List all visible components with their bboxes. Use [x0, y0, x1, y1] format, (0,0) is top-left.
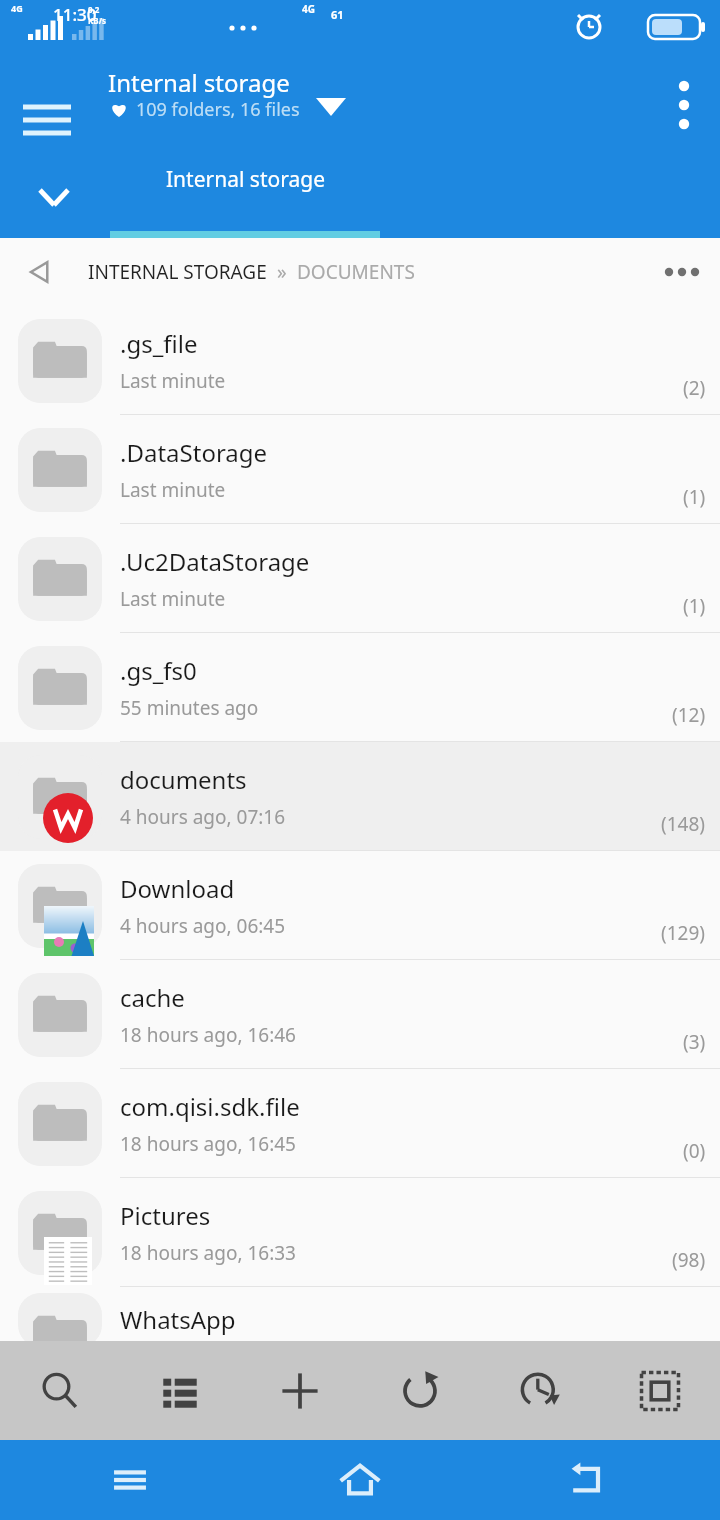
staticText: 55 minutes ago	[120, 695, 259, 721]
button[interactable]: Internal storage	[110, 137, 380, 238]
button[interactable]: Path options	[656, 246, 708, 298]
staticText: Download	[120, 872, 235, 905]
staticText: com.qisi.sdk.file	[120, 1090, 300, 1123]
staticText: WhatsApp	[120, 1303, 236, 1336]
staticText: Last minute	[120, 586, 226, 612]
staticText: 18 hours ago, 16:45	[120, 1131, 296, 1157]
staticText: (1)	[683, 484, 706, 510]
staticText: documents	[120, 763, 247, 796]
button[interactable]: .gs_fs0	[0, 633, 720, 742]
staticText: 61	[331, 7, 344, 22]
button[interactable]: History	[480, 1341, 600, 1440]
button[interactable]: .Uc2DataStorage	[0, 524, 720, 633]
staticText: (0)	[683, 1138, 706, 1164]
button[interactable]: cache	[0, 960, 720, 1069]
button[interactable]: Download	[0, 851, 720, 960]
button[interactable]: Up one level	[16, 248, 64, 296]
button[interactable]: Expand tabs	[24, 158, 84, 218]
staticText: 4G	[302, 2, 315, 16]
staticText: 109 folders, 16 files	[136, 97, 300, 122]
staticText: »	[267, 259, 297, 285]
button[interactable]: Home	[320, 1440, 400, 1520]
button[interactable]: Select	[600, 1341, 720, 1440]
button[interactable]: Refresh	[360, 1341, 480, 1440]
staticText: (3)	[683, 1029, 706, 1055]
staticText: Internal storage	[166, 165, 325, 194]
button[interactable]: Search	[0, 1341, 120, 1440]
staticText: cache	[120, 981, 185, 1014]
staticText: Pictures	[120, 1199, 211, 1232]
staticText: .DataStorage	[120, 436, 268, 469]
staticText: .gs_fs0	[120, 654, 197, 687]
button[interactable]: Open navigation drawer	[10, 65, 70, 125]
staticText: 18 hours ago, 16:33	[120, 1240, 296, 1266]
button[interactable]: INTERNAL STORAGE	[88, 259, 415, 285]
staticText: (12)	[672, 702, 706, 728]
staticText: 4 hours ago, 06:45	[120, 913, 286, 939]
button[interactable]: More options	[656, 64, 712, 120]
staticText: .gs_file	[120, 327, 198, 360]
button[interactable]: Add	[240, 1341, 360, 1440]
button[interactable]: .DataStorage	[0, 415, 720, 524]
button[interactable]: .gs_file	[0, 306, 720, 415]
staticText: Last minute	[120, 368, 226, 394]
button[interactable]: WhatsApp	[0, 1287, 720, 1347]
staticText: KB/s	[88, 15, 106, 26]
staticText: Internal storage	[108, 66, 290, 99]
staticText: (1)	[683, 593, 706, 619]
button[interactable]: Pictures	[0, 1178, 720, 1287]
staticText: (98)	[672, 1247, 706, 1273]
staticText: 4G	[11, 2, 23, 14]
staticText: Last minute	[120, 477, 226, 503]
staticText: (129)	[661, 920, 706, 946]
button[interactable]: View mode	[120, 1341, 240, 1440]
staticText: INTERNAL STORAGE	[88, 259, 267, 285]
button[interactable]: Recents	[90, 1440, 170, 1520]
staticText: .Uc2DataStorage	[120, 545, 310, 578]
button[interactable]: Back	[550, 1440, 630, 1520]
staticText: DOCUMENTS	[297, 259, 415, 285]
staticText: 18 hours ago, 16:46	[120, 1022, 296, 1048]
staticText: 11:30	[53, 3, 97, 26]
staticText: 4 hours ago, 07:16	[120, 804, 286, 830]
button[interactable]: documents	[0, 742, 720, 851]
staticText: (2)	[683, 375, 706, 401]
staticText: 0,2	[88, 4, 100, 15]
button[interactable]: com.qisi.sdk.file	[0, 1069, 720, 1178]
staticText: (148)	[661, 811, 706, 837]
